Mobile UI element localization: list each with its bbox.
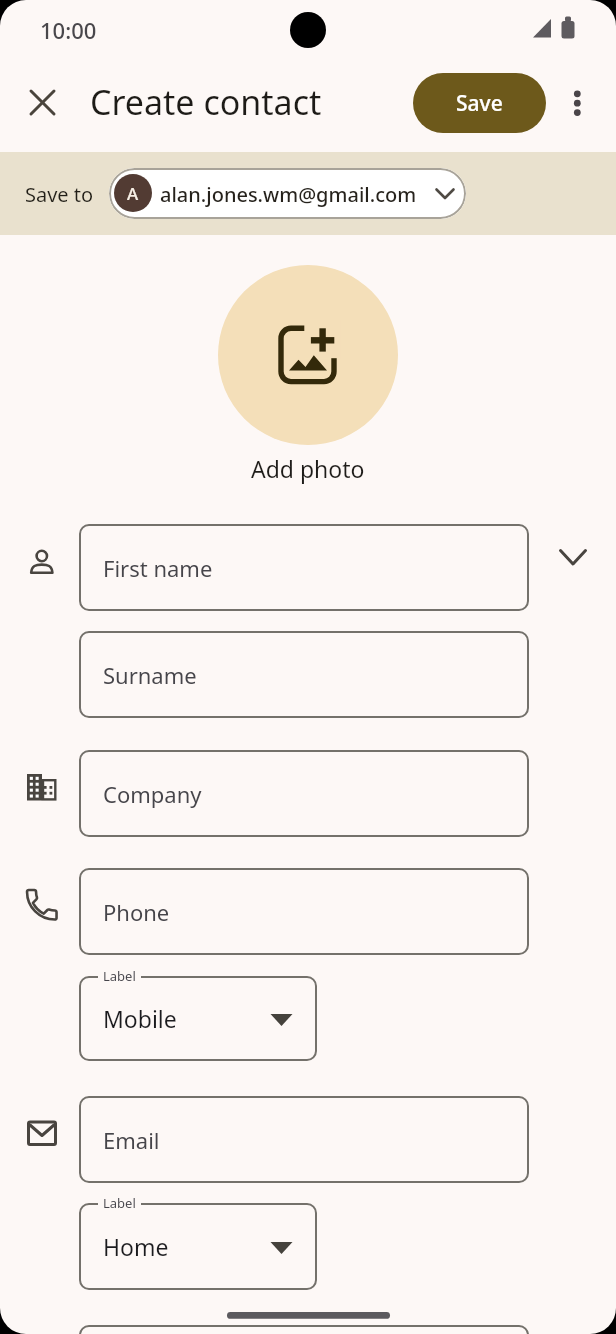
staticText: Email <box>103 1125 160 1155</box>
staticText: First name <box>103 553 213 583</box>
staticText: Save to <box>25 181 94 208</box>
button[interactable]: Email <box>79 1096 529 1183</box>
staticText: Save <box>456 89 503 118</box>
button[interactable]: Surname <box>79 631 529 718</box>
button[interactable] <box>557 80 597 136</box>
staticText: Label <box>103 967 136 985</box>
button[interactable]: Save <box>413 73 546 133</box>
staticText: 10:00 <box>40 15 97 45</box>
button[interactable]: Company <box>79 750 529 837</box>
button[interactable] <box>109 168 466 219</box>
staticText: A <box>127 182 139 205</box>
staticText: Company <box>103 779 202 809</box>
button[interactable]: First name <box>79 524 529 611</box>
staticText: Create contact <box>90 79 322 125</box>
button[interactable] <box>19 79 67 127</box>
staticText: Mobile <box>103 1003 177 1034</box>
button[interactable] <box>549 537 597 585</box>
staticText: Phone <box>103 897 170 927</box>
staticText: Surname <box>103 660 197 690</box>
button[interactable]: Mobile <box>79 976 317 1061</box>
button[interactable]: Home <box>79 1203 317 1290</box>
button[interactable]: Phone <box>79 868 529 955</box>
staticText: Label <box>103 1194 136 1212</box>
button[interactable] <box>218 265 398 445</box>
staticText: alan.jones.wm@gmail.com <box>160 181 417 208</box>
staticText: Home <box>103 1231 169 1262</box>
staticText: Add photo <box>251 453 365 484</box>
